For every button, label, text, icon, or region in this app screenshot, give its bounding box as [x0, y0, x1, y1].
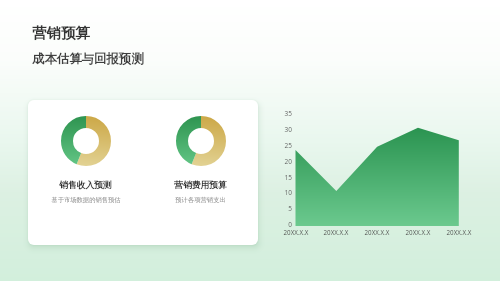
staticText: 销售收入预测: [59, 180, 112, 191]
staticText: 5: [278, 204, 292, 213]
staticText: 20: [278, 157, 292, 166]
staticText: 20XX.X.X: [439, 228, 479, 236]
staticText: 20XX.X.X: [398, 228, 438, 236]
staticText: 20XX.X.X: [316, 228, 356, 236]
staticText: 30: [278, 125, 292, 134]
staticText: 预计各项营销支出: [175, 196, 226, 204]
staticText: 20XX.X.X: [357, 228, 397, 236]
other: 销售收入预测: [61, 116, 111, 166]
staticText: 营销预算: [32, 24, 90, 42]
staticText: 基于市场数据的销售预估: [51, 196, 121, 204]
other: 营销预算趋势图: [0, 0, 500, 281]
button[interactable]: 营销费用预算: [143, 100, 258, 245]
staticText: 10: [278, 188, 292, 197]
staticText: 0: [278, 220, 292, 229]
staticText: 15: [278, 173, 292, 182]
other: 营销费用预算: [176, 116, 226, 166]
staticText: 25: [278, 141, 292, 150]
staticText: 营销费用预算: [174, 180, 227, 191]
staticText: 20XX.X.X: [276, 228, 316, 236]
staticText: 成本估算与回报预测: [32, 51, 144, 67]
button[interactable]: 销售收入预测: [28, 100, 143, 245]
staticText: 35: [278, 109, 292, 118]
